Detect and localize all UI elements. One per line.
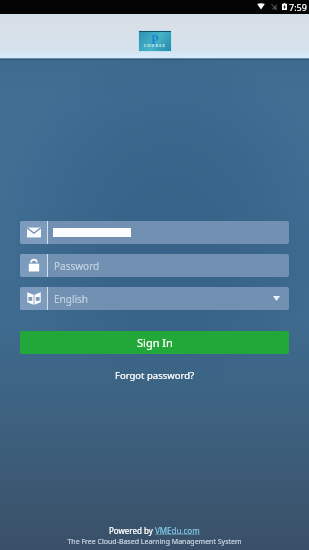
button[interactable]: Password xyxy=(20,254,289,277)
staticText: P xyxy=(151,31,159,47)
staticText: 7:59 xyxy=(289,1,307,13)
button[interactable]: Sign In xyxy=(20,331,289,354)
staticText: English xyxy=(54,292,89,306)
staticText: Sign In xyxy=(137,335,173,350)
button[interactable]: Email xyxy=(20,221,289,244)
staticText: Password xyxy=(54,259,100,273)
staticText: Forgot password? xyxy=(115,369,195,382)
button[interactable]: App logo xyxy=(139,31,171,51)
button[interactable]: Forgot password? xyxy=(109,367,201,384)
button[interactable]: Language xyxy=(20,287,289,310)
staticText: The Free Cloud-Based Learning Management… xyxy=(67,537,242,547)
staticText: COURSE xyxy=(144,43,167,48)
staticText: Powered by xyxy=(109,525,155,536)
button[interactable]: VMEdu.com xyxy=(155,525,200,536)
